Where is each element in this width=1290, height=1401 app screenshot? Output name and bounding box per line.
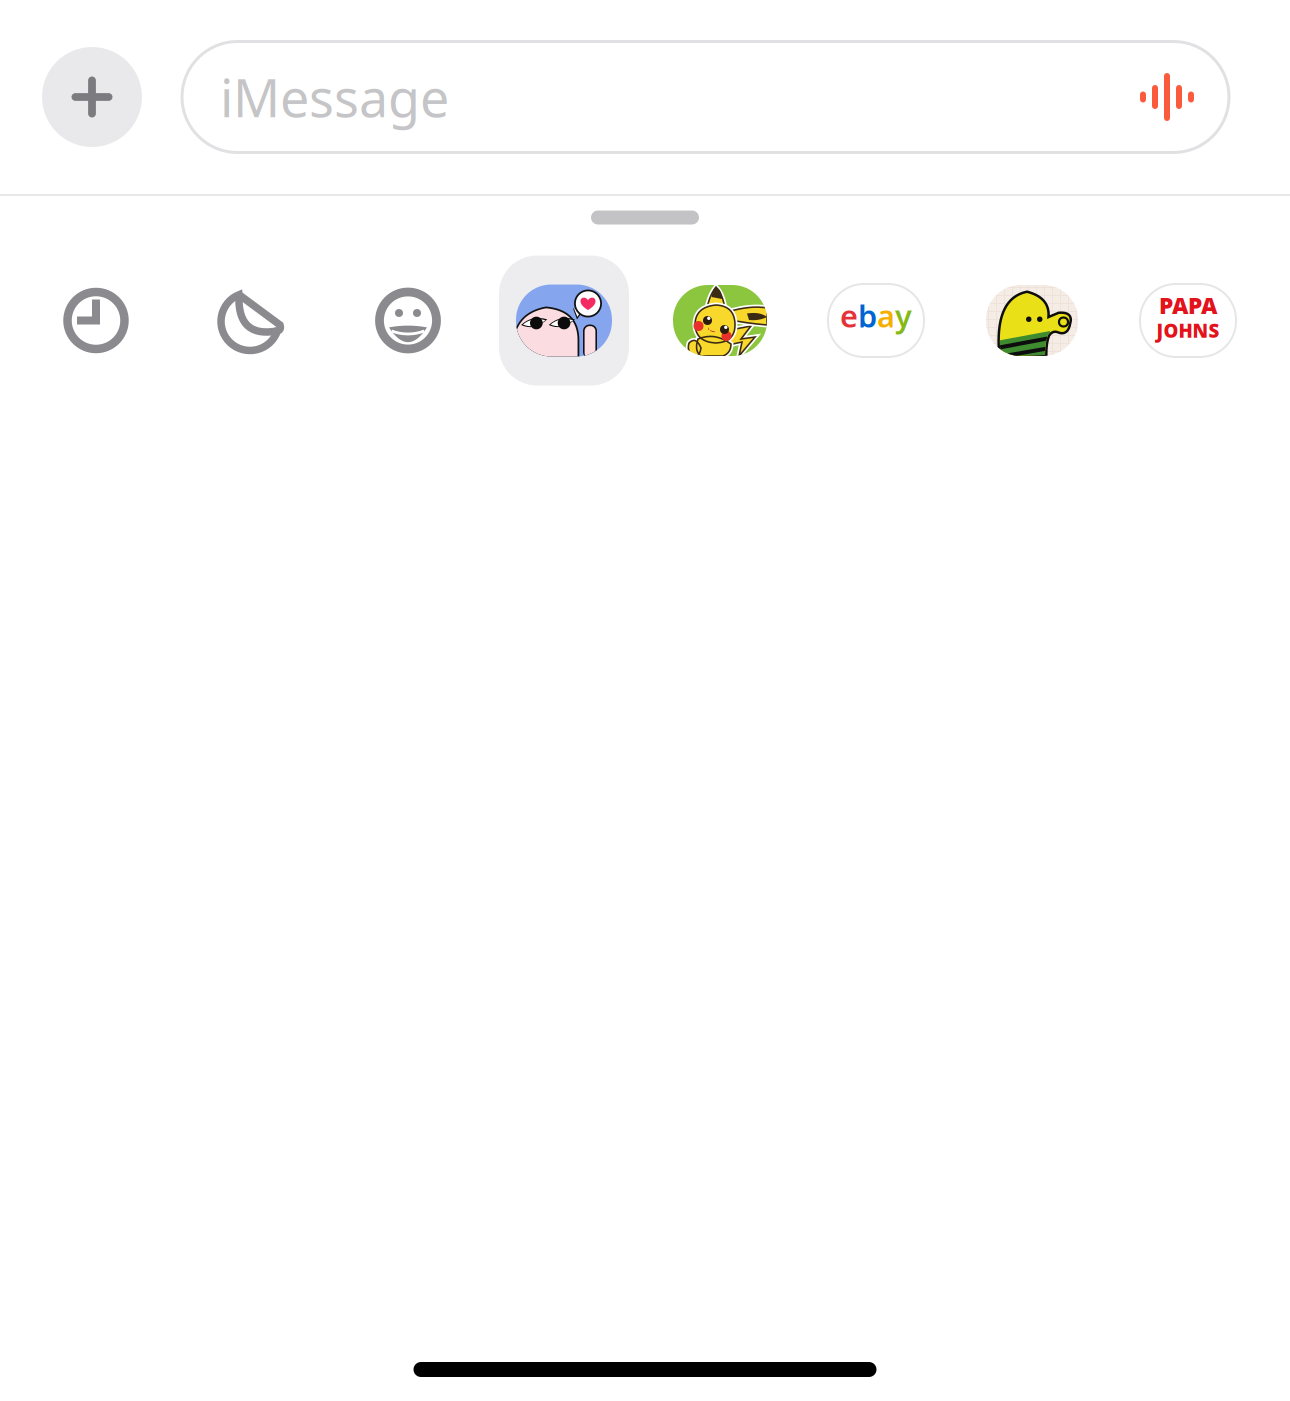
button[interactable]: Message field bbox=[182, 41, 1229, 152]
staticText: e bbox=[840, 295, 858, 336]
staticText: y bbox=[895, 295, 912, 336]
button[interactable]: eBay bbox=[798, 255, 954, 386]
staticText: JOHNS bbox=[1156, 318, 1219, 343]
button[interactable]: Apps bbox=[42, 47, 142, 147]
button[interactable]: Papa Johns bbox=[1110, 255, 1266, 386]
button[interactable]: Pokémon bbox=[642, 255, 798, 386]
staticText: PAPA bbox=[1159, 290, 1217, 320]
staticText: a bbox=[877, 295, 895, 336]
staticText: b bbox=[858, 295, 877, 336]
button[interactable]: Stickers bbox=[174, 255, 330, 386]
staticText: iMessage bbox=[220, 62, 449, 132]
button[interactable]: Doodle Jump bbox=[954, 255, 1110, 386]
button[interactable]: My stickers bbox=[486, 255, 642, 386]
button[interactable]: Emoji bbox=[330, 255, 486, 386]
button[interactable]: Recents bbox=[18, 255, 174, 386]
